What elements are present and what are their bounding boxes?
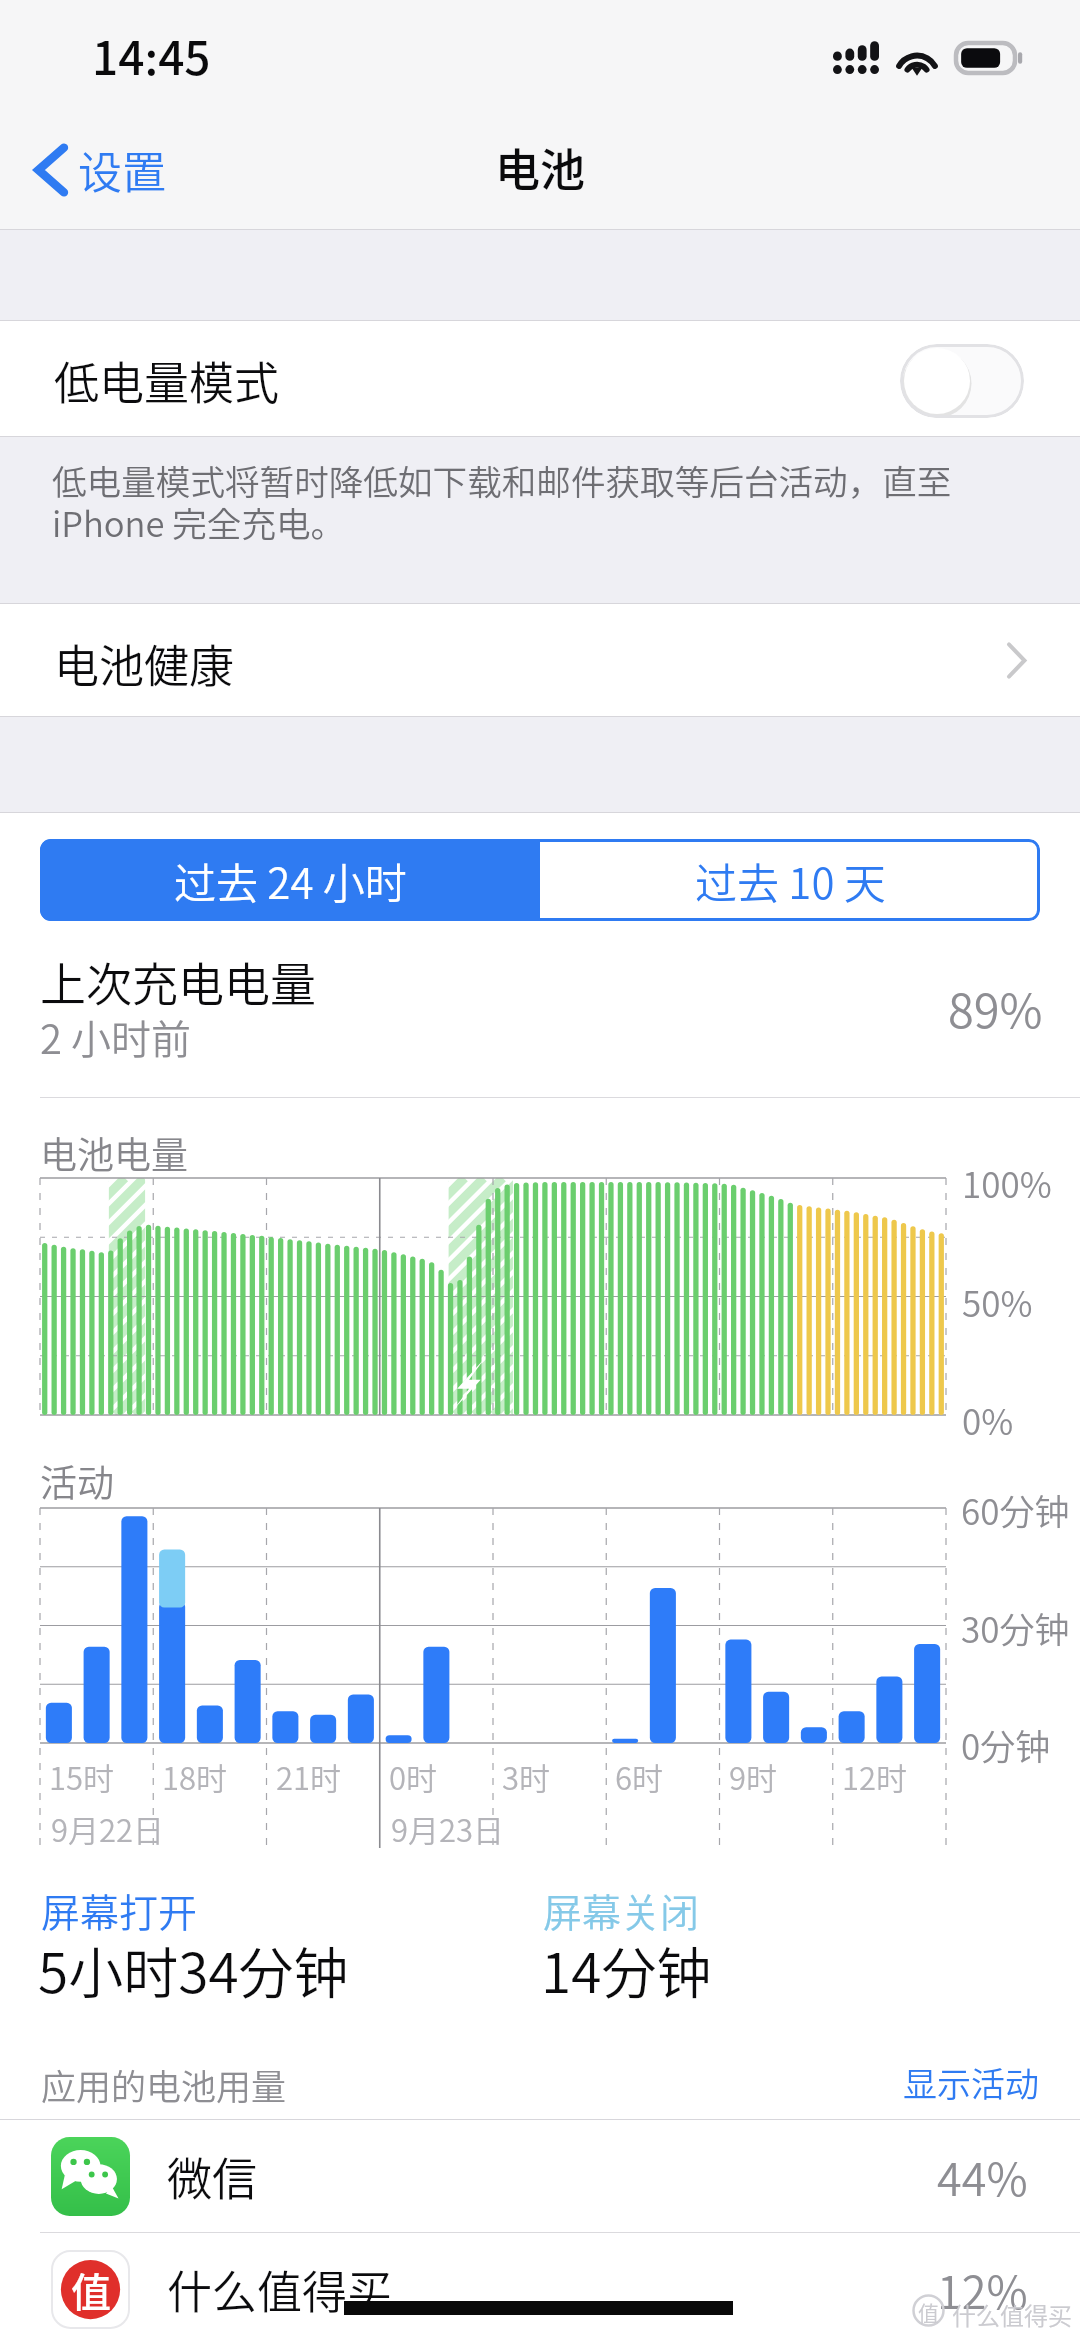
staticText: 0% [962,1394,1014,1445]
staticText: 电池 [495,135,586,200]
staticText: 应用的电池用量 [41,2059,287,2110]
staticText: 44% [937,2144,1028,2209]
staticText: 50% [962,1276,1033,1327]
button[interactable]: 值 [0,2233,1080,2337]
button[interactable]: Back to 设置 [20,128,186,212]
button[interactable]: Low Power Mode toggle [900,344,1024,418]
staticText: 2 小时前 [40,1008,191,1066]
staticText: 屏幕打开 [41,1882,198,1938]
staticText: 低电量模式将暂时降低如下载和邮件获取等后台活动，直至 [52,455,952,505]
staticText: 12时 [842,1754,908,1799]
staticText: 设置 [78,138,166,202]
staticText: 值 [918,2297,939,2327]
staticText: 5小时34分钟 [38,1929,349,2009]
staticText: 12% [937,2257,1028,2322]
staticText: 过去 24 小时 [174,850,407,911]
staticText: 低电量模式 [54,348,280,413]
staticText: 9月23日 [391,1806,505,1851]
staticText: 9时 [729,1754,778,1799]
button[interactable]: 显示活动 [0,2058,1039,2107]
staticText: 屏幕关闭 [543,1882,700,1938]
staticText: 上次充电电量 [40,948,316,1015]
staticText: 100% [962,1157,1052,1208]
staticText: 14分钟 [541,1929,712,2009]
staticText: 0分钟 [961,1719,1051,1770]
staticText: 微信 [167,2144,258,2209]
staticText: 显示活动 [903,2058,1039,2107]
staticText: 什么值得买 [952,2297,1072,2332]
staticText: 18时 [162,1754,228,1799]
staticText: 60分钟 [961,1484,1070,1535]
button[interactable]: 过去 10 天 [540,839,1040,921]
staticText: 6时 [615,1754,664,1799]
staticText: 值 [71,2261,111,2319]
staticText: 14:45 [92,22,211,89]
staticText: iPhone 完全充电。 [52,497,346,547]
staticText: 0时 [389,1754,438,1799]
staticText: 什么值得买 [167,2257,393,2322]
staticText: 9月22日 [51,1806,165,1851]
staticText: 89% [948,973,1043,1041]
button[interactable]: 微信 [0,2120,1080,2233]
staticText: 电池电量 [40,1126,188,1180]
staticText: 电池健康 [54,631,235,696]
staticText: 15时 [49,1754,115,1799]
staticText: 活动 [40,1454,114,1508]
button[interactable]: 低电量模式 [0,324,1080,437]
staticText: 21时 [276,1754,342,1799]
staticText: 30分钟 [961,1602,1070,1653]
button[interactable]: 过去 24 小时 [40,839,540,921]
staticText: 3时 [502,1754,551,1799]
button[interactable]: 电池健康 [0,607,1080,720]
staticText: 过去 10 天 [695,850,886,911]
